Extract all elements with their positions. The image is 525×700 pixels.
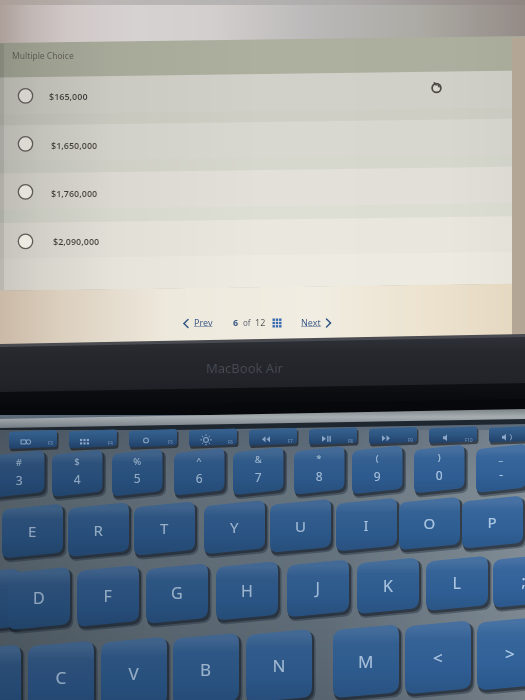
staticText: MacBook Air: [206, 359, 283, 377]
button[interactable]: Prev: [194, 316, 213, 328]
staticText: $1,760,000: [51, 187, 98, 199]
button[interactable]: $165,000: [49, 90, 88, 102]
staticText: $165,000: [49, 90, 88, 102]
staticText: Prev: [194, 316, 213, 328]
staticText: 12: [255, 316, 266, 328]
staticText: Multiple Choice: [12, 50, 74, 62]
staticText: of: [243, 317, 251, 328]
button[interactable]: Multiple Choice: [12, 50, 74, 62]
staticText: Next: [301, 316, 321, 328]
staticText: 6: [233, 316, 239, 328]
other: Pagination controls: [0, 0, 525, 700]
button[interactable]: $1,650,000: [51, 139, 98, 151]
button[interactable]: $2,090,000: [53, 235, 100, 247]
button[interactable]: Next: [301, 316, 321, 328]
staticText: $1,650,000: [51, 139, 98, 151]
staticText: $2,090,000: [53, 235, 100, 247]
button[interactable]: $1,760,000: [51, 187, 98, 199]
